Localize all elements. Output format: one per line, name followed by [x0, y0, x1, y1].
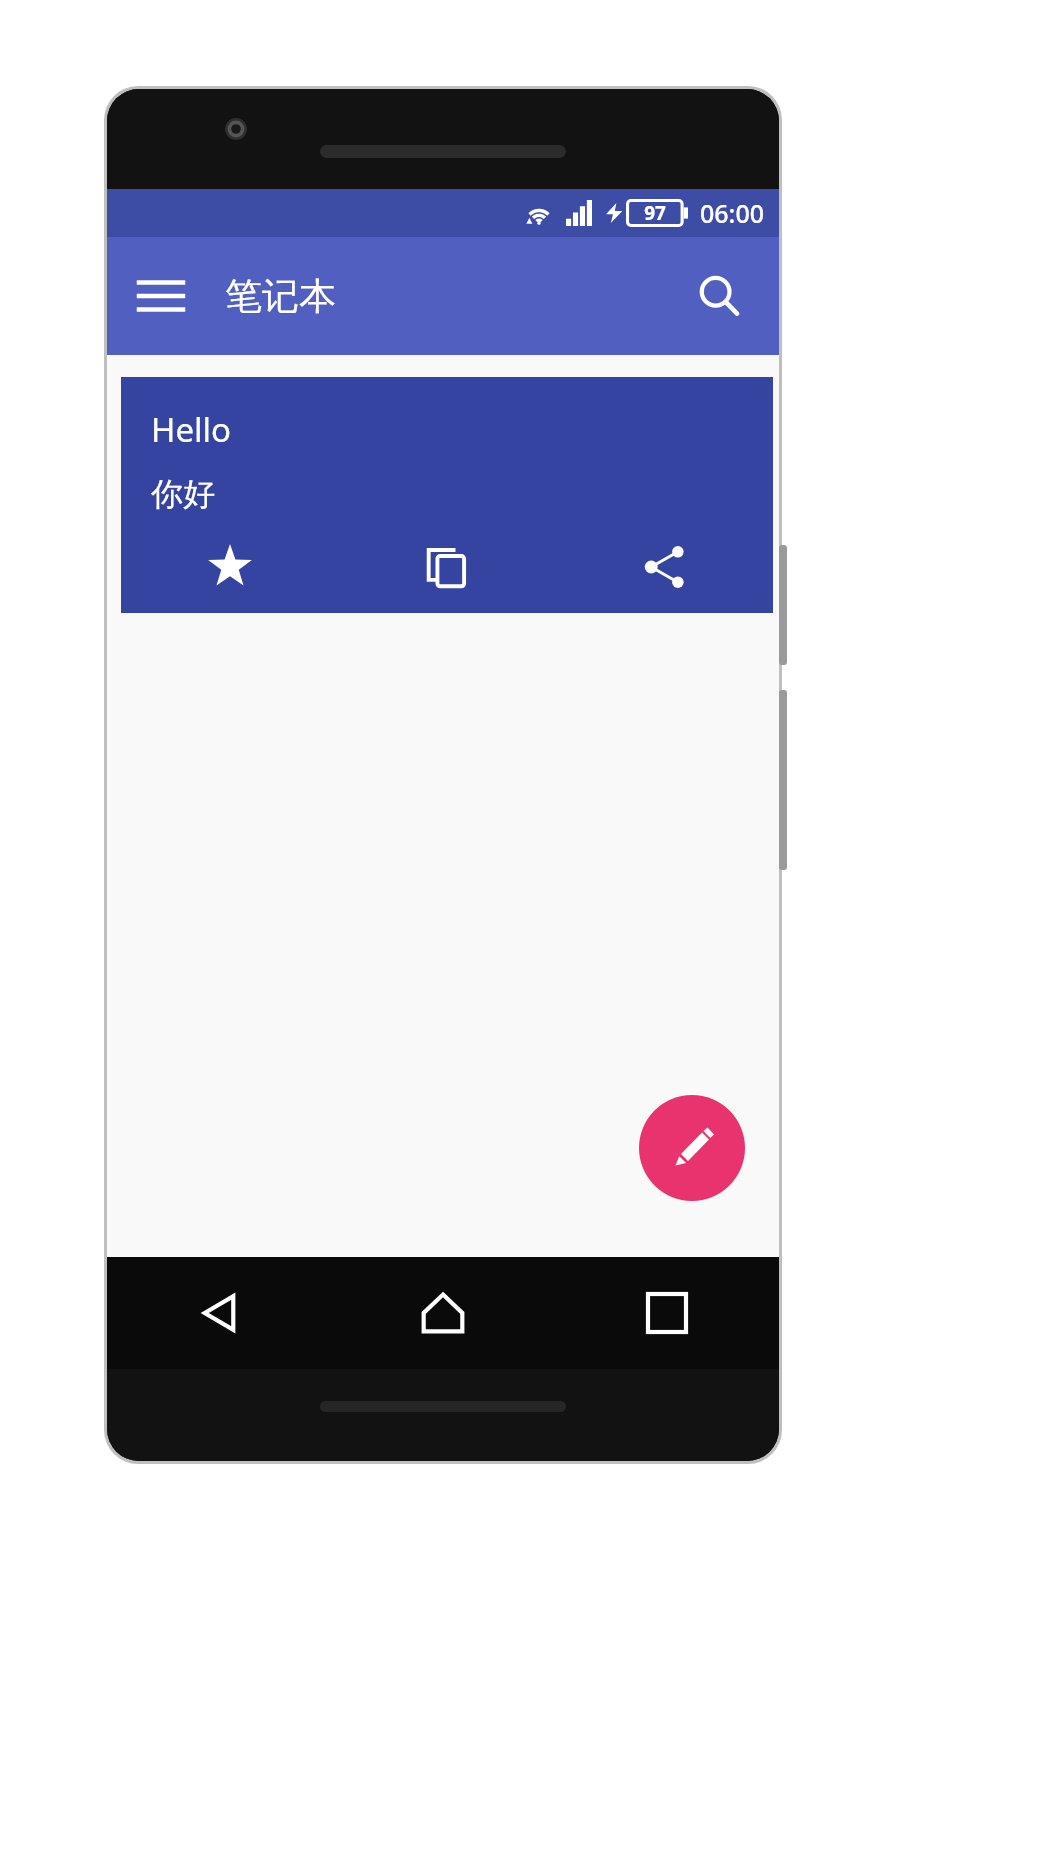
button[interactable]: Recent apps [555, 1257, 779, 1369]
staticText: 你好 [151, 474, 215, 514]
staticText: Hello [151, 407, 232, 452]
staticText: 笔记本 [225, 273, 336, 320]
staticText: 97 [644, 200, 666, 226]
button[interactable]: Hello [121, 377, 773, 613]
button[interactable]: Home [331, 1257, 555, 1369]
button[interactable]: Share [556, 521, 773, 613]
button[interactable]: Search [681, 258, 757, 334]
staticText: 06:00 [700, 196, 765, 230]
button[interactable]: Back [107, 1257, 331, 1369]
button[interactable]: New note [639, 1095, 745, 1201]
button[interactable]: Open navigation drawer [125, 260, 197, 332]
button[interactable]: Copy [339, 521, 556, 613]
button[interactable]: Favourite [121, 521, 339, 613]
